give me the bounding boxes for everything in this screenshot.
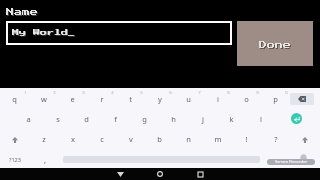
staticText: 8 <box>227 90 230 96</box>
staticText: 0 <box>285 90 288 96</box>
button[interactable]: j <box>188 111 217 129</box>
button[interactable]: Shift <box>290 131 319 149</box>
staticText: y <box>158 94 162 104</box>
staticText: , <box>44 154 47 165</box>
staticText: 1 <box>24 90 27 96</box>
button[interactable]: l <box>246 111 275 129</box>
staticText: 4 <box>111 90 114 96</box>
button[interactable]: d <box>72 111 101 129</box>
button[interactable]: Back <box>105 168 135 180</box>
staticText: n <box>186 134 191 144</box>
staticText: t <box>129 94 132 104</box>
staticText: b <box>157 134 162 144</box>
button[interactable]: c <box>87 131 116 149</box>
button[interactable]: Recents <box>185 168 215 180</box>
button[interactable]: ? <box>261 131 290 149</box>
staticText: d <box>84 114 89 124</box>
button[interactable]: v <box>116 131 145 149</box>
staticText: ?123 <box>9 156 21 163</box>
staticText: 9 <box>256 90 259 96</box>
button[interactable]: . <box>266 152 284 166</box>
staticText: p <box>273 94 278 104</box>
button[interactable]: f <box>101 111 130 129</box>
button[interactable]: 8 <box>203 91 232 109</box>
button[interactable]: k <box>217 111 246 129</box>
button[interactable]: a <box>14 111 43 129</box>
staticText: q <box>12 94 17 104</box>
staticText: Screen Recorder <box>275 159 308 165</box>
staticText: 3 <box>82 90 85 96</box>
button[interactable]: Backspace <box>290 93 314 105</box>
staticText: h <box>171 114 176 124</box>
button[interactable]: 5 <box>116 91 145 109</box>
staticText: s <box>56 114 60 124</box>
button[interactable]: 7 <box>174 91 203 109</box>
staticText: . <box>274 154 277 165</box>
staticText: u <box>186 94 191 104</box>
button[interactable]: 9 <box>232 91 261 109</box>
staticText: z <box>42 134 46 144</box>
button[interactable]: My World_ <box>6 21 232 45</box>
staticText: f <box>114 114 117 124</box>
button[interactable]: 1 <box>0 91 29 109</box>
staticText: ? <box>274 134 278 144</box>
staticText: j <box>202 114 204 124</box>
button[interactable]: b <box>145 131 174 149</box>
button[interactable]: 6 <box>145 91 174 109</box>
staticText: Name <box>6 8 38 16</box>
staticText: Done <box>259 41 291 49</box>
staticText: r <box>100 94 104 104</box>
button[interactable]: s <box>43 111 72 129</box>
staticText: l <box>260 114 262 124</box>
staticText: g <box>142 114 147 124</box>
staticText: v <box>129 134 133 144</box>
button[interactable]: Shift <box>0 131 29 149</box>
staticText: 5 <box>140 90 143 96</box>
button[interactable]: n <box>174 131 203 149</box>
staticText: m <box>214 134 222 144</box>
staticText: 6 <box>169 90 172 96</box>
button[interactable]: ?123 <box>3 152 27 166</box>
staticText: ! <box>245 134 248 144</box>
staticText: o <box>244 94 249 104</box>
button[interactable]: z <box>29 131 58 149</box>
button[interactable]: , <box>36 152 54 166</box>
button[interactable]: 3 <box>58 91 87 109</box>
staticText: My World_ <box>12 29 75 36</box>
button[interactable]: Home <box>145 168 175 180</box>
button[interactable]: Done <box>237 21 313 66</box>
button[interactable]: 2 <box>29 91 58 109</box>
button[interactable]: h <box>159 111 188 129</box>
staticText: k <box>229 114 234 124</box>
staticText: 2 <box>53 90 56 96</box>
button[interactable]: ! <box>232 131 261 149</box>
staticText: My World_ <box>13 30 76 37</box>
staticText: a <box>26 114 31 124</box>
button[interactable]: 0 <box>261 91 290 109</box>
staticText: x <box>71 134 75 144</box>
staticText: Name <box>7 9 39 17</box>
staticText: 7 <box>198 90 201 96</box>
button[interactable]: 4 <box>87 91 116 109</box>
staticText: w <box>41 94 47 104</box>
staticText: e <box>70 94 75 104</box>
button[interactable]: m <box>203 131 232 149</box>
button[interactable]: x <box>58 131 87 149</box>
button[interactable]: g <box>130 111 159 129</box>
staticText: Done <box>260 42 292 50</box>
staticText: c <box>100 134 104 144</box>
staticText: i <box>217 94 219 104</box>
button[interactable]: Enter <box>291 113 302 124</box>
